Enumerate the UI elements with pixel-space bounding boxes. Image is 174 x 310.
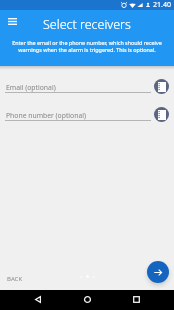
- button[interactable]: Open navigation menu: [4, 13, 21, 30]
- staticText: Email (optional): [6, 83, 56, 92]
- button[interactable]: Pick from contacts: [154, 107, 169, 122]
- button[interactable]: Back: [30, 291, 46, 307]
- staticText: BACK: [7, 275, 23, 283]
- staticText: Select receivers: [43, 16, 131, 33]
- button[interactable]: Next: [147, 261, 169, 283]
- staticText: Enter the email or the phone number, whi…: [5, 39, 169, 54]
- staticText: Phone number (optional): [6, 111, 87, 120]
- button[interactable]: Recent apps: [128, 291, 144, 307]
- button[interactable]: Home: [79, 291, 95, 307]
- staticText: 21.40: [153, 0, 171, 10]
- button[interactable]: BACK: [7, 275, 23, 283]
- button[interactable]: Pick from contacts: [154, 79, 169, 94]
